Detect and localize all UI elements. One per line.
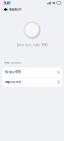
button[interactable]: Back — [0, 7, 21, 12]
staticText: 9:41 — [3, 0, 10, 6]
staticText: Nearby YOYO — [5, 70, 21, 74]
button[interactable]: Nearby YOYO — [2, 68, 62, 77]
staticText: Sobre den, hade YOYO — [16, 43, 47, 47]
button[interactable]: Magicity test — [2, 77, 62, 87]
staticText: Smart Services — [4, 61, 21, 64]
staticText: Magicity test — [5, 80, 21, 84]
staticText: Assistent — [9, 8, 21, 11]
